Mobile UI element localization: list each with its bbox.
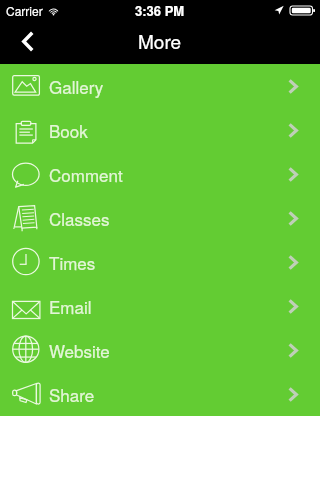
button[interactable]: Classes: [0, 196, 320, 240]
staticText: Email: [49, 294, 92, 318]
staticText: Times: [49, 250, 96, 274]
staticText: 3:36 PM: [135, 1, 185, 20]
button[interactable]: Website: [0, 328, 320, 372]
button[interactable]: Email: [0, 284, 320, 328]
staticText: Book: [49, 118, 88, 142]
staticText: Website: [49, 338, 110, 362]
staticText: Share: [49, 382, 95, 406]
button[interactable]: Book: [0, 108, 320, 152]
staticText: Gallery: [49, 74, 104, 98]
button[interactable]: Times: [0, 240, 320, 284]
staticText: Comment: [49, 162, 123, 186]
button[interactable]: Back: [0, 20, 55, 64]
staticText: Classes: [49, 206, 110, 230]
staticText: Carrier: [6, 2, 43, 19]
button[interactable]: Share: [0, 372, 320, 416]
button[interactable]: Comment: [0, 152, 320, 196]
button[interactable]: Gallery: [0, 64, 320, 108]
staticText: More: [138, 27, 182, 54]
